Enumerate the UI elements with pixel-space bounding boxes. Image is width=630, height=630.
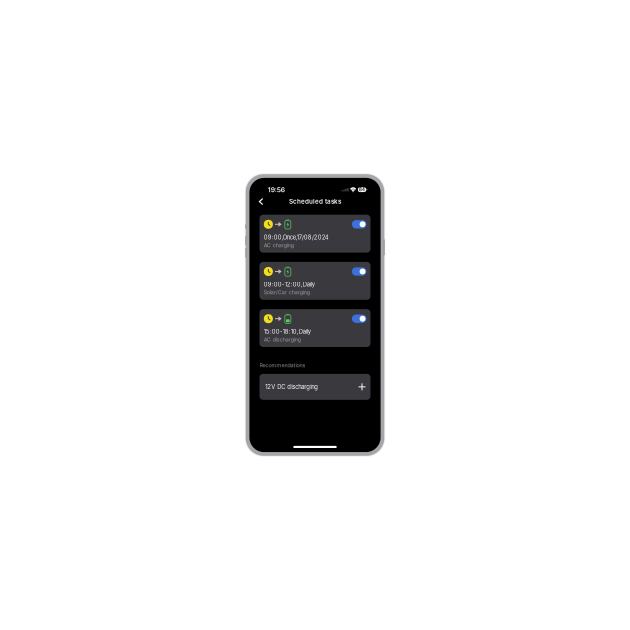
staticText: 09:00,Once,17/08/2024 [264,234,329,241]
staticText: Recommendations [259,362,305,368]
staticText: 84 [359,187,365,192]
button[interactable]: 09:00-12:00,Daily [259,262,370,300]
button[interactable]: 15:00-18:10,Daily [259,309,370,347]
staticText: AC charging [264,242,294,248]
staticText: 15:00-18:10,Daily [264,328,311,335]
staticText: 12V DC discharging [265,383,318,390]
staticText: AC discharging [264,336,301,343]
button[interactable]: Back [249,195,268,208]
staticText: Solar/Car charging [264,289,310,296]
staticText: 19:56 [268,186,285,194]
staticText: 09:00-12:00,Daily [264,281,315,288]
button[interactable]: 12V DC discharging [259,374,370,400]
button[interactable]: 09:00,Once,17/08/2024 [259,215,370,253]
staticText: Scheduled tasks [289,198,341,205]
